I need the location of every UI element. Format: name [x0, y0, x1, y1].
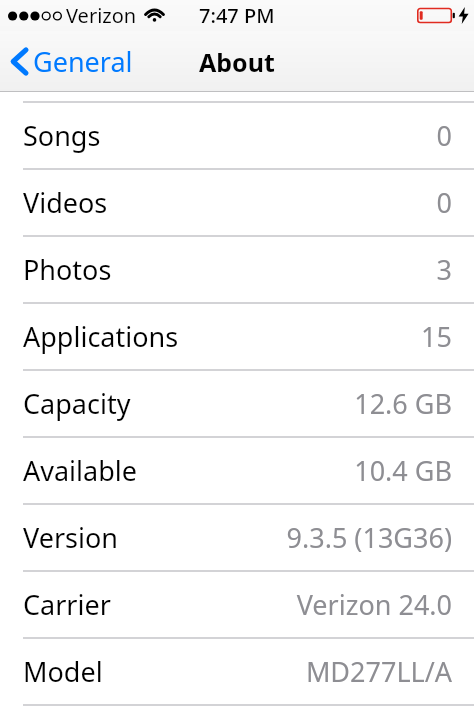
- staticText: 0: [436, 117, 452, 154]
- staticText: 0: [436, 184, 452, 221]
- staticText: 7:47 PM: [199, 2, 275, 29]
- staticText: Verizon: [66, 2, 137, 29]
- button[interactable]: Applications: [0, 304, 474, 369]
- staticText: MD277LL/A: [305, 653, 452, 690]
- staticText: Capacity: [23, 385, 131, 422]
- button[interactable]: Version: [0, 505, 474, 570]
- button[interactable]: Model: [0, 639, 474, 704]
- staticText: 15: [421, 318, 452, 355]
- staticText: Videos: [23, 184, 108, 221]
- staticText: General: [33, 43, 133, 80]
- button[interactable]: Videos: [0, 170, 474, 235]
- staticText: 9.3.5 (13G36): [286, 519, 452, 556]
- staticText: Model: [23, 653, 103, 690]
- staticText: 12.6 GB: [354, 385, 452, 422]
- button[interactable]: Carrier: [0, 572, 474, 637]
- staticText: Songs: [23, 117, 101, 154]
- button[interactable]: General: [0, 37, 143, 86]
- button[interactable]: Photos: [0, 237, 474, 302]
- staticText: Photos: [23, 251, 112, 288]
- button[interactable]: Songs: [0, 103, 474, 168]
- staticText: 10.4 GB: [354, 452, 452, 489]
- button[interactable]: Capacity: [0, 371, 474, 436]
- staticText: Carrier: [23, 586, 111, 623]
- staticText: Verizon 24.0: [296, 586, 452, 623]
- button[interactable]: Available: [0, 438, 474, 503]
- staticText: Applications: [23, 318, 179, 355]
- staticText: 3: [436, 251, 452, 288]
- staticText: About: [199, 45, 275, 79]
- staticText: Available: [23, 452, 137, 489]
- staticText: Version: [23, 519, 118, 556]
